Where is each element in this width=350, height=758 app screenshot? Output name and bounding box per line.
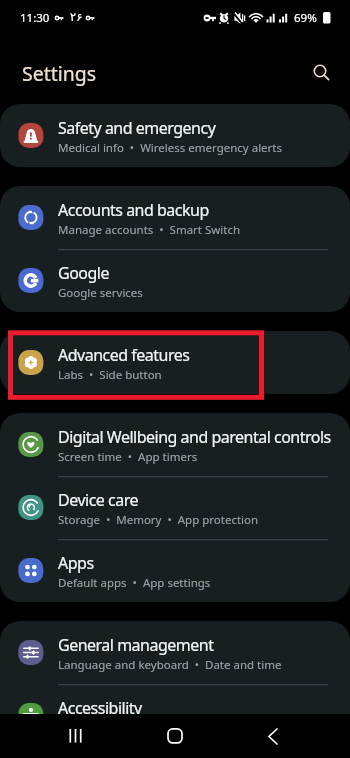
staticText: Apps <box>58 552 94 574</box>
button[interactable]: Advanced features <box>0 331 350 394</box>
staticText: Device care <box>58 489 138 511</box>
button[interactable]: Home <box>155 724 195 748</box>
staticText: ۲۶ <box>70 10 83 23</box>
staticText: 69% <box>294 10 317 26</box>
staticText: Manage accounts • Smart Switch <box>58 222 241 238</box>
button[interactable]: Digital Wellbeing and parental controls <box>0 413 350 476</box>
button[interactable]: Device care <box>0 476 350 539</box>
staticText: Advanced features <box>58 344 190 366</box>
button[interactable]: Safety and emergency <box>0 104 350 167</box>
button[interactable]: Accessibility <box>0 684 350 747</box>
button[interactable]: Accounts and backup <box>0 186 350 249</box>
button[interactable]: General management <box>0 621 350 684</box>
button[interactable]: Apps <box>0 539 350 602</box>
staticText: Vision • Hearing <box>58 720 151 736</box>
staticText: Safety and emergency <box>58 117 216 139</box>
staticText: Google services <box>58 285 143 301</box>
staticText: 11:30 <box>20 10 50 26</box>
button[interactable]: Google <box>0 249 350 312</box>
staticText: Language and keyboard • Date and time <box>58 657 282 673</box>
staticText: Accounts and backup <box>58 199 209 221</box>
staticText: Default apps • App settings <box>58 575 211 591</box>
staticText: General management <box>58 634 214 656</box>
staticText: Medical info • Wireless emergency alerts <box>58 140 282 156</box>
staticText: Accessibility <box>58 697 142 719</box>
staticText: Labs • Side button <box>58 367 162 383</box>
button[interactable]: Recent apps <box>56 724 97 748</box>
staticText: Screen time • App timers <box>58 449 198 465</box>
staticText: Settings <box>22 60 97 87</box>
staticText: Digital Wellbeing and parental controls <box>58 426 331 448</box>
button[interactable]: Back <box>253 724 293 748</box>
staticText: Google <box>58 262 110 284</box>
staticText: Storage • Memory • App protection <box>58 512 259 528</box>
button[interactable]: Search <box>306 57 334 85</box>
